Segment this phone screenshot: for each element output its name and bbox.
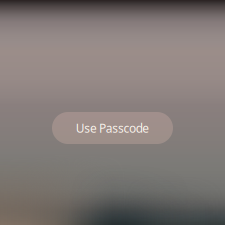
button[interactable]: Use Passcode [52, 112, 173, 144]
staticText: Use Passcode [76, 120, 149, 136]
